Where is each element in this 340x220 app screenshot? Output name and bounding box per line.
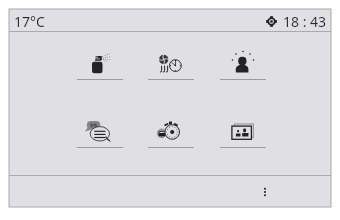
button[interactable]: Air freshener [75, 51, 125, 81]
button[interactable]: Fan timer [146, 51, 196, 81]
button[interactable]: Face recognition [218, 51, 268, 81]
staticText: 18 : 43 [283, 12, 327, 31]
button[interactable]: More options [254, 181, 276, 203]
button[interactable]: Contacts [218, 119, 268, 149]
staticText: 17°C [14, 12, 45, 31]
button[interactable]: Stopwatch [146, 119, 196, 149]
button[interactable]: Messages [75, 119, 125, 149]
